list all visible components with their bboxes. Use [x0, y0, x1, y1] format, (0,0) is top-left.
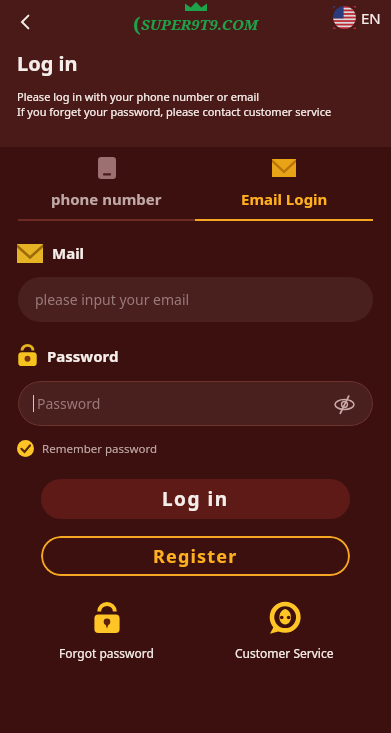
button[interactable]: Customer Service	[195, 602, 373, 661]
button[interactable]: Back	[6, 2, 46, 42]
staticText: Email Login	[241, 189, 328, 209]
staticText: Forgot password	[59, 645, 154, 661]
staticText: phone number	[51, 189, 162, 209]
button[interactable]: Register	[41, 536, 350, 576]
staticText: Log in	[162, 486, 229, 512]
staticText: EN	[361, 8, 381, 28]
staticText: Password	[47, 346, 119, 366]
staticText: Log in	[17, 50, 78, 77]
staticText: (	[133, 12, 141, 36]
staticText: Customer Service	[235, 645, 334, 661]
button[interactable]: Log in	[41, 479, 350, 519]
staticText: SUPER9T9.COM	[141, 14, 259, 34]
button[interactable]: Show password	[331, 391, 357, 417]
button[interactable]: please input your email	[18, 277, 373, 322]
button[interactable]: phone number	[18, 155, 195, 211]
staticText: Mail	[52, 243, 85, 263]
staticText: Remember password	[42, 441, 158, 457]
button[interactable]: Forgot password	[18, 602, 195, 661]
button[interactable]: EN	[333, 6, 381, 29]
button[interactable]: Remember password	[17, 440, 158, 457]
staticText: please input your email	[35, 290, 190, 309]
staticText: Password	[37, 394, 331, 413]
staticText: Register	[153, 544, 238, 569]
staticText: Please log in with your phone number or …	[17, 89, 260, 104]
button[interactable]: SUPER9T9.COM logo	[133, 2, 259, 36]
staticText: If you forget your password, please cont…	[17, 104, 332, 119]
button[interactable]: Password	[18, 381, 373, 426]
button[interactable]: Email Login	[195, 157, 373, 211]
